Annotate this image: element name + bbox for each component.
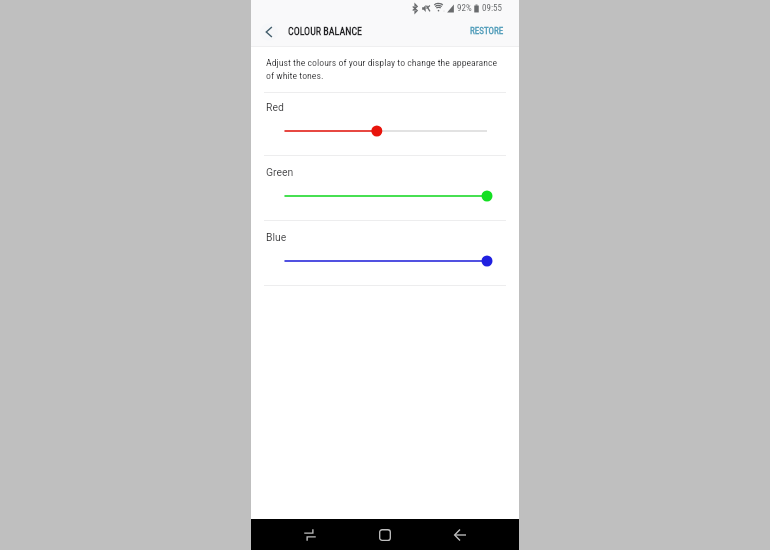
staticText: 09:55: [482, 3, 502, 14]
button[interactable]: Navigate up: [259, 22, 279, 42]
button[interactable]: Green: [251, 169, 519, 234]
button[interactable]: Blue: [251, 234, 519, 299]
button[interactable]: RESTORE: [455, 19, 519, 44]
staticText: 92%: [457, 3, 472, 14]
button[interactable]: Home: [373, 519, 397, 550]
staticText: Adjust the colours of your display to ch…: [266, 57, 502, 81]
button[interactable]: Recents: [298, 519, 322, 550]
staticText: COLOUR BALANCE: [288, 26, 363, 38]
staticText: Red: [266, 101, 284, 113]
staticText: Green: [266, 166, 294, 178]
button[interactable]: Red: [251, 104, 519, 169]
button[interactable]: Back: [448, 519, 472, 550]
staticText: RESTORE: [470, 26, 504, 37]
staticText: Blue: [266, 231, 287, 243]
